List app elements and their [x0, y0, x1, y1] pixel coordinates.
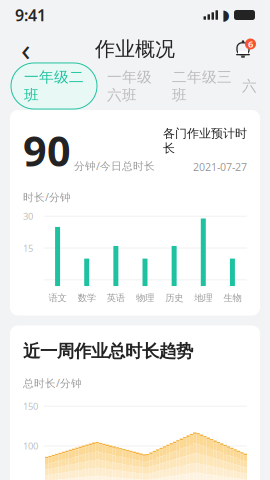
button[interactable]: 一年级六班	[97, 63, 162, 109]
staticText: 一年级六班	[107, 68, 152, 104]
staticText: 150	[23, 400, 38, 412]
staticText: ◗	[222, 7, 230, 23]
staticText: 9:41	[15, 4, 46, 26]
button[interactable]: Back	[7, 30, 45, 68]
staticText: 100	[23, 440, 38, 452]
button[interactable]: 一年级二班	[11, 63, 97, 109]
staticText: 总时长/分钟	[23, 376, 82, 390]
staticText: 时长/分钟	[23, 190, 71, 204]
button[interactable]: Notifications	[225, 30, 263, 68]
staticText: 地理	[194, 292, 212, 304]
staticText: 各门作业预计时长	[163, 126, 247, 156]
staticText: 物理	[136, 292, 154, 304]
staticText: 30	[23, 210, 33, 222]
staticText: 生物	[223, 292, 241, 304]
staticText: 分钟/今日总时长	[71, 159, 155, 173]
staticText: 语文	[49, 292, 67, 304]
staticText: 近一周作业总时长趋势	[23, 340, 193, 362]
staticText: 2021-07-27	[193, 160, 247, 174]
staticText: 15	[23, 242, 33, 254]
staticText: 90	[23, 123, 71, 178]
staticText: ‹	[21, 29, 31, 69]
staticText: 数学	[78, 292, 96, 304]
staticText: 六	[242, 77, 257, 95]
staticText: 二年级三班	[172, 68, 232, 104]
staticText: 作业概况	[95, 37, 175, 61]
staticText: 英语	[107, 292, 125, 304]
staticText: 一年级二班	[24, 68, 84, 104]
staticText: 6	[248, 38, 253, 50]
button[interactable]: 二年级三班	[162, 63, 242, 109]
button[interactable]: 六	[242, 72, 257, 100]
staticText: 历史	[165, 292, 183, 304]
